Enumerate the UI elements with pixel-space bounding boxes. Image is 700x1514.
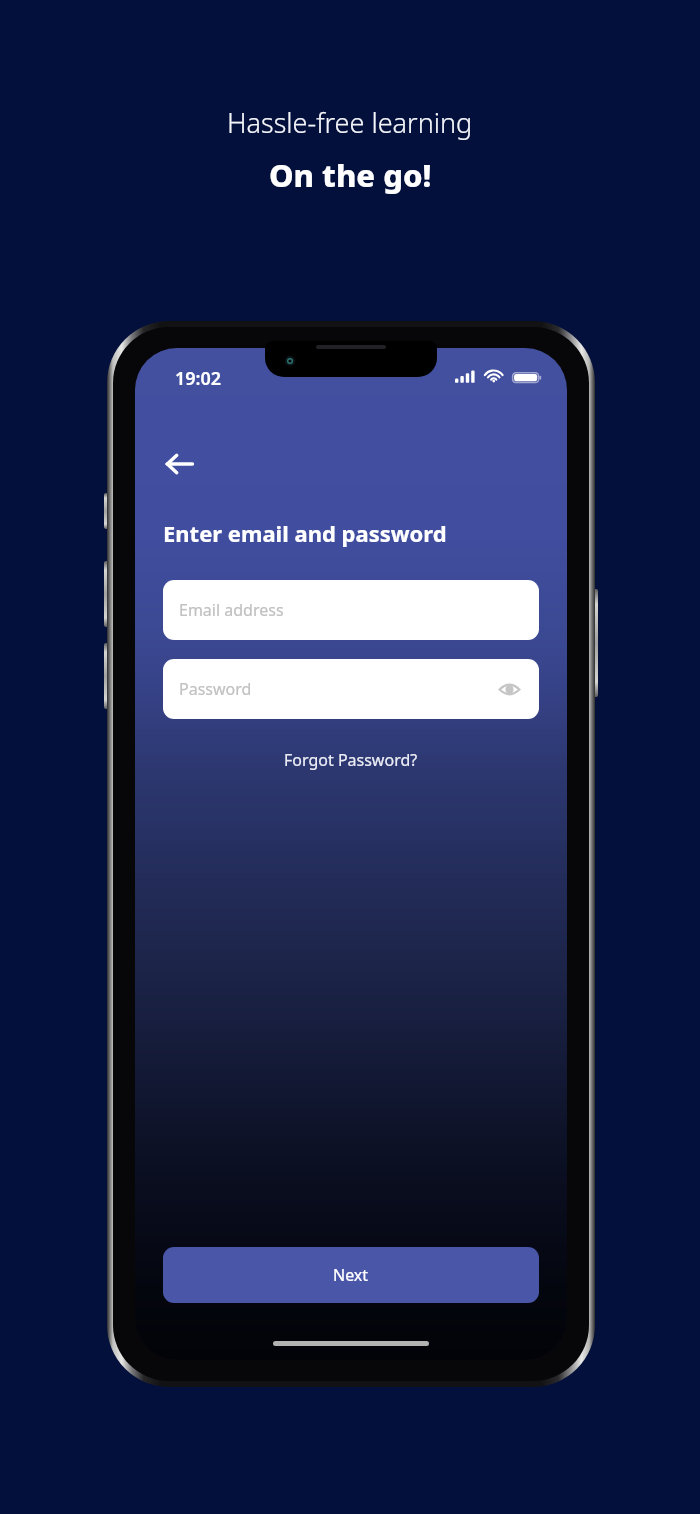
staticText: Email address xyxy=(179,599,284,621)
button[interactable]: Show password xyxy=(495,675,523,703)
staticText: On the go! xyxy=(269,154,432,196)
button[interactable]: Forgot Password? xyxy=(276,745,426,775)
staticText: Forgot Password? xyxy=(284,749,418,771)
button[interactable]: Back xyxy=(155,440,203,488)
staticText: Password xyxy=(179,678,252,700)
button[interactable]: Password xyxy=(163,659,539,719)
staticText: Next xyxy=(333,1264,369,1286)
staticText: 19:02 xyxy=(175,366,222,391)
button[interactable]: Next xyxy=(163,1247,539,1303)
staticText: Enter email and password xyxy=(163,518,447,548)
staticText: Hassle-free learning xyxy=(227,104,473,141)
button[interactable]: Email address xyxy=(163,580,539,640)
